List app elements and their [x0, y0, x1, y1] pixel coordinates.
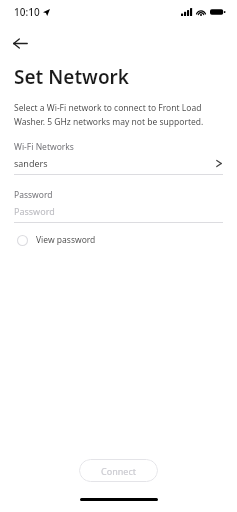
button[interactable]: Password: [14, 189, 223, 223]
staticText: Connect: [101, 465, 136, 477]
button[interactable]: Connect: [79, 459, 158, 482]
staticText: Password: [14, 189, 53, 201]
staticText: Wi-Fi Networks: [14, 141, 74, 153]
staticText: 10:10: [14, 5, 40, 19]
staticText: Select a Wi-Fi network to connect to Fro…: [14, 102, 223, 127]
button[interactable]: Back: [4, 27, 36, 59]
button[interactable]: View password: [17, 234, 96, 246]
staticText: View password: [36, 234, 96, 246]
staticText: Password: [14, 205, 55, 217]
button[interactable]: Wi-Fi Networks: [14, 141, 223, 175]
staticText: Set Network: [14, 64, 130, 90]
staticText: sanders: [14, 157, 215, 169]
